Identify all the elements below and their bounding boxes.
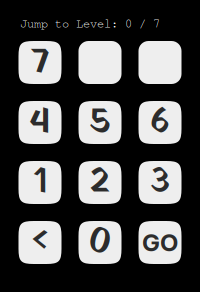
button[interactable]: 4: [18, 101, 61, 144]
staticText: 2: [89, 156, 110, 209]
staticText: 1: [33, 156, 47, 209]
button[interactable]: 1: [18, 161, 61, 204]
button[interactable]: 7: [18, 41, 61, 84]
button[interactable]: 0: [78, 221, 121, 264]
staticText: 3: [150, 156, 170, 209]
button[interactable]: 5: [78, 101, 121, 144]
staticText: Jump to Level: 0 / 7: [20, 16, 160, 30]
staticText: 6: [150, 96, 170, 149]
staticText: 7: [30, 36, 49, 89]
staticText: <: [31, 216, 49, 269]
button[interactable]: GO: [138, 221, 181, 264]
staticText: 5: [89, 96, 111, 149]
button[interactable]: 6: [138, 101, 181, 144]
staticText: 4: [29, 96, 50, 149]
button[interactable]: 3: [138, 161, 181, 204]
button[interactable]: 2: [78, 161, 121, 204]
staticText: 0: [89, 216, 111, 269]
button[interactable]: <: [18, 221, 61, 264]
staticText: GO: [142, 228, 178, 257]
